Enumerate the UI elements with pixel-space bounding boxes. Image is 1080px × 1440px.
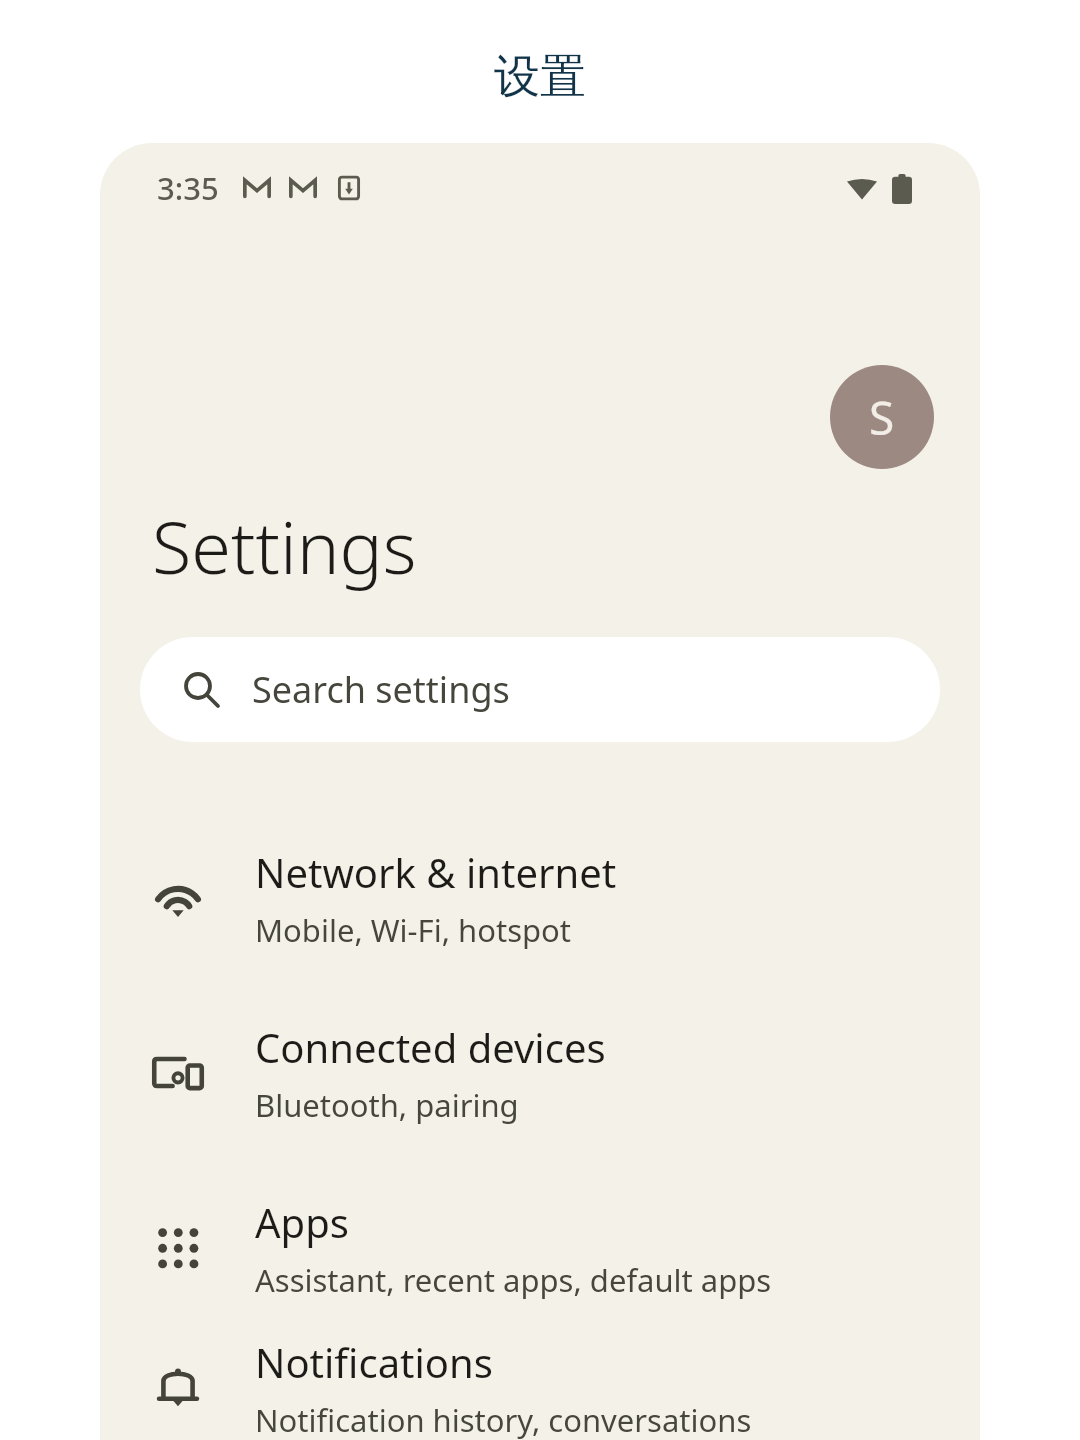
staticText: Settings [152,497,417,595]
staticText: 3:35 [157,167,219,209]
button[interactable]: Notifications [100,1335,980,1440]
staticText: Notifications [255,1335,493,1389]
button[interactable]: Apps [100,1160,980,1335]
staticText: Apps [255,1195,349,1249]
staticText: Bluetooth, pairing [255,1084,519,1126]
staticText: 设置 [494,48,586,106]
staticText: Network & internet [255,845,617,899]
button[interactable]: Network & internet [100,810,980,985]
staticText: Notification history, conversations [255,1399,752,1440]
staticText: Connected devices [255,1020,606,1074]
button[interactable]: Account [830,365,934,469]
button[interactable]: Search settings [140,637,940,742]
button[interactable]: Connected devices [100,985,980,1160]
staticText: Search settings [252,665,510,714]
staticText: S [869,386,895,449]
staticText: Assistant, recent apps, default apps [255,1259,772,1301]
staticText: Mobile, Wi-Fi, hotspot [255,909,572,951]
